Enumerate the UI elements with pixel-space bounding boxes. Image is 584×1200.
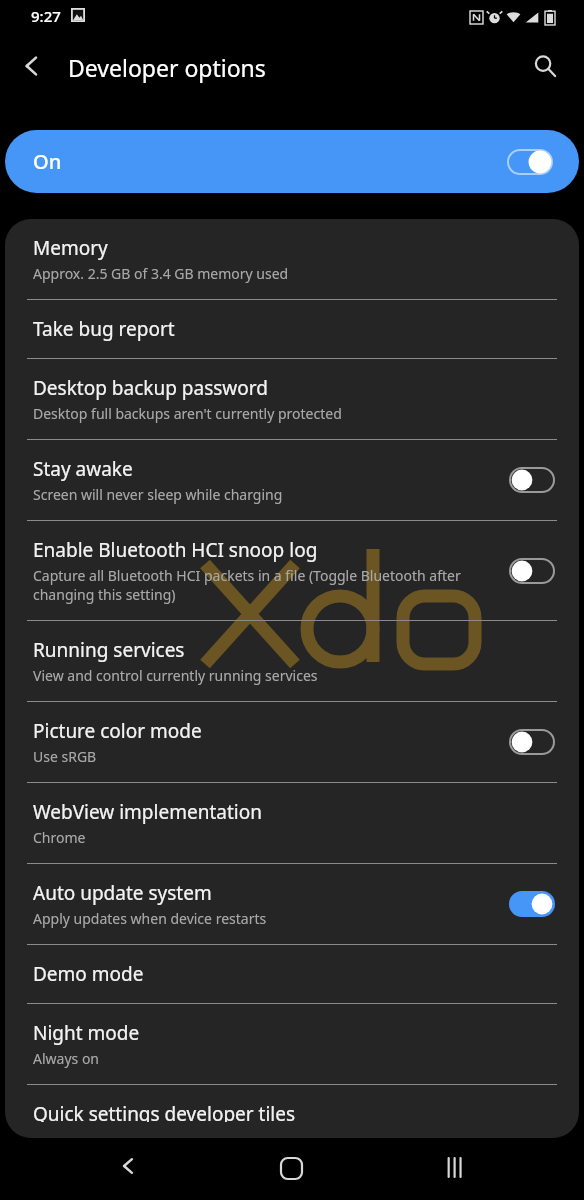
- staticText: Take bug report: [33, 316, 175, 342]
- button[interactable]: Back: [104, 1138, 584, 1200]
- button[interactable]: Take bug report: [5, 300, 579, 359]
- button[interactable]: Enable Bluetooth HCI snoop log: [5, 521, 579, 621]
- staticText: Approx. 2.5 GB of 3.4 GB memory used: [33, 264, 289, 283]
- staticText: On: [33, 148, 507, 175]
- button[interactable]: Back: [8, 42, 56, 90]
- button[interactable]: Enable Bluetooth HCI snoop log toggle: [509, 558, 555, 584]
- staticText: Desktop backup password: [33, 375, 268, 401]
- button[interactable]: Night mode: [5, 1004, 579, 1085]
- button[interactable]: Memory: [5, 219, 579, 300]
- button[interactable]: Auto update system toggle: [509, 891, 555, 917]
- button[interactable]: WebView implementation: [5, 783, 579, 864]
- staticText: Picture color mode: [33, 718, 202, 744]
- button[interactable]: Home: [268, 1138, 584, 1200]
- button[interactable]: Stay awake: [5, 440, 579, 521]
- staticText: Always on: [33, 1049, 100, 1068]
- staticText: Desktop full backups aren't currently pr…: [33, 404, 342, 423]
- button[interactable]: Picture color mode: [5, 702, 579, 783]
- staticText: WebView implementation: [33, 799, 262, 825]
- button[interactable]: Stay awake toggle: [509, 467, 555, 493]
- staticText: Developer options: [68, 52, 266, 83]
- staticText: 9:27: [31, 6, 61, 26]
- staticText: Chrome: [33, 828, 86, 847]
- staticText: Auto update system: [33, 880, 212, 906]
- button[interactable]: Desktop backup password: [5, 359, 579, 440]
- button[interactable]: Auto update system: [5, 864, 579, 945]
- staticText: Demo mode: [33, 961, 144, 987]
- button[interactable]: Running services: [5, 621, 579, 702]
- button[interactable]: Search: [521, 42, 569, 90]
- staticText: Apply updates when device restarts: [33, 909, 267, 928]
- button[interactable]: Demo mode: [5, 945, 579, 1004]
- staticText: Running services: [33, 637, 185, 663]
- button[interactable]: Recent apps: [432, 1138, 584, 1200]
- staticText: Capture all Bluetooth HCI packets in a f…: [33, 566, 499, 604]
- staticText: Quick settings developer tiles: [33, 1101, 296, 1122]
- staticText: Night mode: [33, 1020, 140, 1046]
- button[interactable]: On: [5, 130, 579, 193]
- staticText: Use sRGB: [33, 747, 97, 766]
- staticText: Screen will never sleep while charging: [33, 485, 283, 504]
- staticText: Memory: [33, 235, 108, 261]
- staticText: Stay awake: [33, 456, 133, 482]
- button[interactable]: Picture color mode toggle: [509, 729, 555, 755]
- staticText: View and control currently running servi…: [33, 666, 318, 685]
- staticText: Enable Bluetooth HCI snoop log: [33, 537, 318, 563]
- button[interactable]: Quick settings developer tiles: [5, 1085, 579, 1138]
